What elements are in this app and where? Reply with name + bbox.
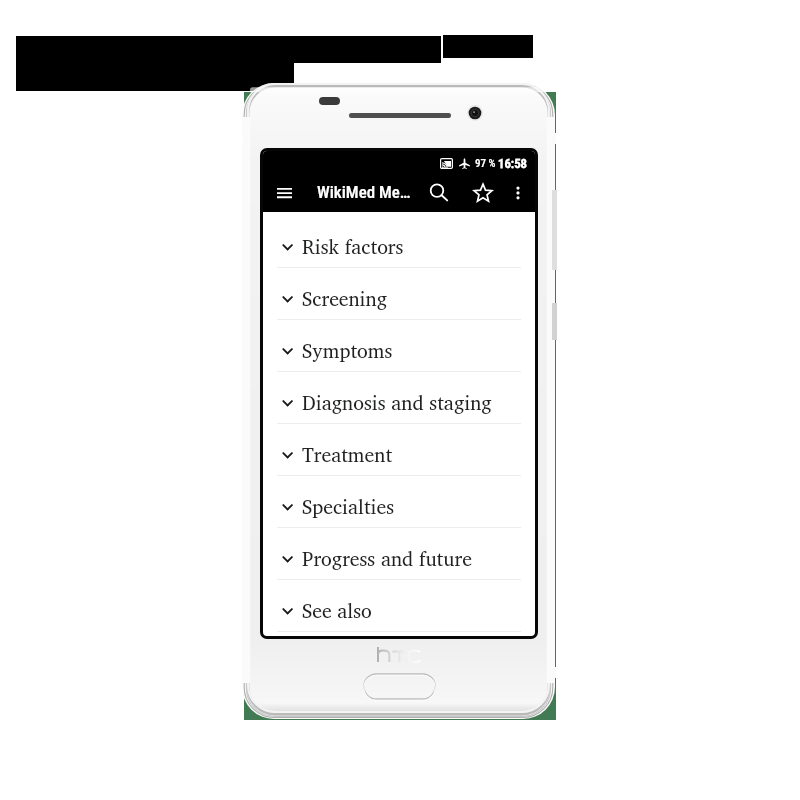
button[interactable]: Treatment xyxy=(263,424,535,476)
staticText: Risk factors xyxy=(302,230,404,262)
staticText: 97 % xyxy=(475,157,496,170)
button[interactable]: Navigation menu xyxy=(265,174,303,212)
staticText: 16:58 xyxy=(498,156,527,171)
button[interactable]: More options xyxy=(499,174,535,212)
staticText: Treatment xyxy=(302,438,393,470)
staticText: See also xyxy=(302,594,372,626)
staticText: Screening xyxy=(302,282,388,314)
button[interactable]: Screening xyxy=(263,268,535,320)
staticText: Symptoms xyxy=(302,334,393,366)
button[interactable]: Symptoms xyxy=(263,320,535,372)
button[interactable]: See also xyxy=(263,580,535,632)
staticText: Diagnosis and staging xyxy=(302,386,492,418)
button[interactable]: Progress and future xyxy=(263,528,535,580)
button[interactable]: Specialties xyxy=(263,476,535,528)
button[interactable]: Add to favourites xyxy=(464,174,502,212)
staticText: Specialties xyxy=(302,490,395,522)
button[interactable]: Risk factors xyxy=(263,216,535,268)
button[interactable]: Diagnosis and staging xyxy=(263,372,535,424)
button[interactable]: Search xyxy=(420,174,458,212)
staticText: WikiMed Me… xyxy=(317,182,411,202)
staticText: Progress and future xyxy=(302,542,472,574)
